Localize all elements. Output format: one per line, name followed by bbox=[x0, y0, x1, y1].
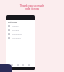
staticText: Settings bbox=[8, 21, 18, 24]
button[interactable]: Tab bbox=[11, 64, 13, 66]
staticText: Account bbox=[12, 37, 21, 40]
staticText: Profile bbox=[12, 29, 19, 32]
staticText: Favorites bbox=[12, 33, 22, 36]
staticText: Home bbox=[12, 25, 19, 28]
button[interactable]: Menu bbox=[0, 64, 12, 72]
button[interactable]: Account bbox=[6, 36, 35, 40]
button[interactable]: Home bbox=[6, 24, 35, 28]
staticText: rate it now bbox=[0, 7, 64, 11]
button[interactable]: Profile bbox=[6, 28, 35, 32]
button[interactable]: Favorites bbox=[6, 32, 35, 36]
staticText: Thank you so much bbox=[0, 4, 64, 8]
